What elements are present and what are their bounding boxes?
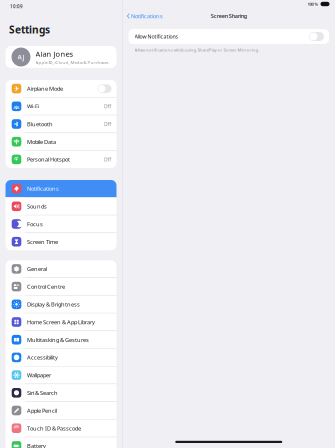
staticText: Wi-Fi bbox=[27, 102, 39, 110]
button[interactable]: Apple Pencil bbox=[5, 402, 116, 419]
button[interactable]: Screen Time bbox=[5, 233, 116, 250]
staticText: Personal Hotspot bbox=[27, 155, 70, 163]
button[interactable]: Display & Brightness bbox=[5, 296, 116, 313]
button[interactable]: Focus bbox=[5, 215, 116, 233]
staticText: Apple Pencil bbox=[27, 407, 57, 414]
button[interactable]: Wallpaper bbox=[5, 366, 116, 384]
staticText: AJ bbox=[17, 52, 24, 62]
staticText: Allow Notifications bbox=[134, 33, 178, 40]
staticText: Off bbox=[103, 103, 111, 110]
button[interactable]: Siri & Search bbox=[5, 384, 116, 401]
staticText: Bluetooth bbox=[27, 120, 53, 128]
staticText: Mobile Data bbox=[27, 138, 56, 145]
staticText: Focus bbox=[27, 220, 43, 228]
staticText: Wallpaper bbox=[27, 371, 51, 379]
staticText: Home Screen & App Library bbox=[27, 318, 95, 326]
button[interactable]: General bbox=[5, 260, 116, 277]
button[interactable]: Multitasking & Gestures bbox=[5, 331, 116, 348]
button[interactable]: Airplane Mode bbox=[5, 80, 116, 97]
staticText: Airplane Mode bbox=[27, 85, 63, 92]
staticText: Multitasking & Gestures bbox=[27, 336, 89, 343]
staticText: 10:09 bbox=[10, 3, 23, 9]
button[interactable]: Personal Hotspot bbox=[5, 151, 116, 168]
staticText: Battery bbox=[27, 442, 46, 448]
button[interactable]: AJ bbox=[0, 46, 122, 68]
staticText: Screen Time bbox=[27, 238, 58, 245]
staticText: Screen Sharing bbox=[211, 12, 247, 20]
button[interactable]: Allow Notifications bbox=[122, 29, 335, 44]
staticText: Accessibility bbox=[27, 353, 58, 361]
staticText: Notifications bbox=[27, 185, 59, 192]
staticText: Display & Brightness bbox=[27, 300, 80, 308]
button[interactable]: Notifications bbox=[5, 180, 116, 197]
button[interactable]: Sounds bbox=[5, 198, 116, 215]
staticText: Control Centre bbox=[27, 283, 65, 290]
staticText: General bbox=[27, 265, 47, 273]
button[interactable]: Bluetooth bbox=[5, 115, 116, 133]
staticText: Alan Jones bbox=[35, 49, 73, 59]
staticText: Off bbox=[103, 120, 111, 128]
button[interactable]: Mobile Data bbox=[5, 133, 116, 150]
staticText: Allow notifications while using SharePla… bbox=[134, 47, 259, 53]
staticText: 100 % bbox=[307, 1, 318, 7]
staticText: Notifications bbox=[131, 12, 163, 20]
staticText: Touch ID & Passcode bbox=[27, 424, 81, 432]
staticText: Siri & Search bbox=[27, 389, 58, 397]
button[interactable]: Accessibility bbox=[5, 349, 116, 366]
button[interactable]: Touch ID & Passcode bbox=[5, 420, 116, 437]
button[interactable]: Wi-Fi bbox=[5, 98, 116, 115]
button[interactable]: Battery bbox=[5, 437, 116, 448]
staticText: Settings bbox=[9, 23, 50, 36]
button[interactable]: Control Centre bbox=[5, 278, 116, 295]
button[interactable]: Notifications bbox=[122, 9, 167, 23]
staticText: Sounds bbox=[27, 202, 47, 210]
button[interactable]: Home Screen & App Library bbox=[5, 313, 116, 331]
staticText: Apple ID, iCloud, Media & Purchases bbox=[35, 60, 108, 65]
staticText: Off bbox=[103, 156, 111, 163]
